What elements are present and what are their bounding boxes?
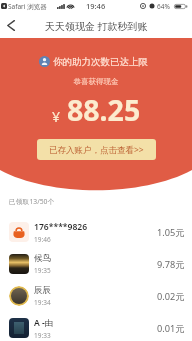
staticText: 0.01元: [157, 322, 185, 335]
button[interactable]: 辰辰: [0, 280, 192, 312]
staticText: A -由: [34, 317, 54, 329]
button[interactable]: A -由: [0, 312, 192, 341]
staticText: 恭喜获得现金: [0, 77, 192, 86]
staticText: 候鸟: [34, 253, 52, 264]
staticText: 已存入账户，点击查看>>: [49, 144, 144, 156]
staticText: 19:46: [86, 1, 106, 11]
staticText: ¥: [52, 107, 61, 126]
staticText: 19:34: [34, 298, 51, 307]
staticText: 1.05元: [157, 226, 185, 239]
staticText: 已领取13/50个: [9, 197, 55, 206]
button[interactable]: 候鸟: [0, 248, 192, 280]
staticText: 0.02元: [157, 290, 185, 303]
staticText: 176****9826: [34, 221, 88, 233]
staticText: 天天领现金 打款秒到账: [45, 19, 148, 33]
staticText: 辰辰: [34, 285, 52, 296]
button[interactable]: 已存入账户，点击查看>>: [37, 139, 156, 160]
staticText: 88.25: [67, 91, 141, 130]
staticText: 64%: [157, 2, 170, 11]
staticText: 19:35: [34, 266, 51, 275]
button[interactable]: 176****9826: [0, 216, 192, 248]
staticText: 你的助力次数已达上限: [53, 56, 148, 68]
staticText: 19:33: [34, 331, 51, 340]
staticText: Safari 浏览器: [8, 2, 47, 11]
button[interactable]: Back: [0, 14, 22, 36]
staticText: 19:46: [34, 235, 51, 244]
staticText: 9.78元: [157, 258, 185, 271]
